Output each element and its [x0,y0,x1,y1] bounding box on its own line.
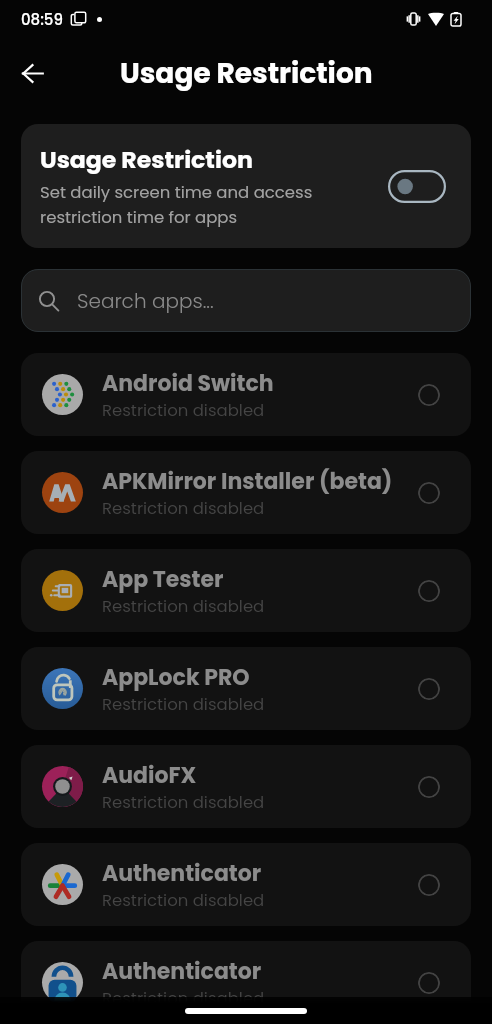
staticText: Restriction disabled [102,889,265,912]
button[interactable]: APKMirror Installer (beta) [21,451,471,534]
staticText: 08:59 [21,9,63,30]
button[interactable]: Back [12,53,52,93]
button[interactable]: App Tester [21,549,471,632]
button[interactable]: Select Android Switch [418,384,440,406]
staticText: Usage Restriction [120,54,373,93]
button[interactable]: Authenticator [21,843,471,926]
button[interactable]: Search apps... [21,269,471,332]
button[interactable]: Select App Tester [418,580,440,602]
button[interactable]: Select APKMirror Installer (beta) [418,482,440,504]
staticText: Android Switch [102,368,274,399]
staticText: AudioFX [102,760,197,791]
button[interactable]: Select AudioFX [418,776,440,798]
button[interactable]: Authenticator [21,941,471,1024]
button[interactable]: Usage Restriction [21,124,471,248]
button[interactable]: Select Authenticator [418,874,440,896]
button[interactable]: Toggle usage restriction [388,170,446,203]
button[interactable]: Select AppLock PRO [418,678,440,700]
staticText: Restriction disabled [102,693,265,716]
button[interactable]: AppLock PRO [21,647,471,730]
button[interactable]: AudioFX [21,745,471,828]
staticText: APKMirror Installer (beta) [102,466,393,497]
button[interactable]: Android Switch [21,353,471,436]
staticText: Restriction disabled [102,399,265,422]
staticText: Set daily screen time and access restric… [40,181,325,229]
staticText: Search apps... [77,287,214,315]
staticText: Restriction disabled [102,791,265,814]
staticText: Authenticator [102,858,262,889]
staticText: Usage Restriction [40,143,253,176]
button[interactable]: Select Authenticator [418,972,440,994]
staticText: Restriction disabled [102,595,265,618]
staticText: Restriction disabled [102,987,265,1010]
staticText: App Tester [102,564,224,595]
staticText: AppLock PRO [102,662,250,693]
staticText: Authenticator [102,956,262,987]
staticText: Restriction disabled [102,497,265,520]
